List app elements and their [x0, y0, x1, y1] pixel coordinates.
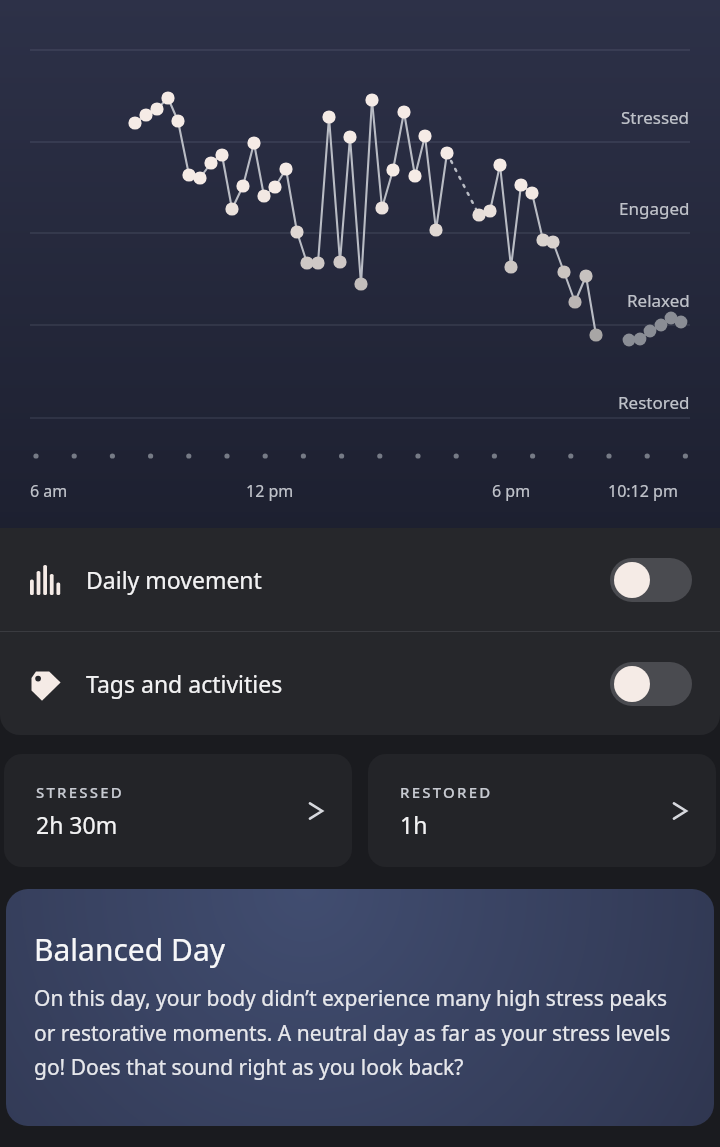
staticText: RESTORED	[400, 782, 493, 802]
staticText: 6 pm	[492, 480, 531, 502]
staticText: Engaged	[619, 197, 690, 220]
staticText: 2h 30m	[36, 809, 118, 840]
staticText: 1h	[400, 809, 428, 840]
staticText: 10:12 pm	[608, 480, 678, 502]
button[interactable]: RESTORED	[368, 754, 716, 867]
staticText: On this day, your body didn’t experience…	[34, 984, 690, 1081]
staticText: 12 pm	[246, 480, 294, 502]
staticText: Tags and activities	[86, 668, 283, 699]
staticText: Stressed	[621, 106, 690, 129]
staticText: 6 am	[30, 480, 68, 502]
button[interactable]: Tags and activities	[0, 632, 720, 735]
button[interactable]: Daily movement	[0, 528, 720, 631]
other: Daily movement	[30, 565, 64, 595]
staticText: Restored	[618, 391, 690, 414]
staticText: Relaxed	[627, 289, 690, 312]
button[interactable]: Balanced Day	[6, 889, 714, 1126]
button[interactable]: STRESSED	[4, 754, 352, 867]
other: Tags and activities	[30, 669, 64, 699]
staticText: STRESSED	[36, 782, 124, 802]
staticText: Balanced Day	[34, 929, 226, 970]
staticText: Daily movement	[86, 564, 262, 595]
